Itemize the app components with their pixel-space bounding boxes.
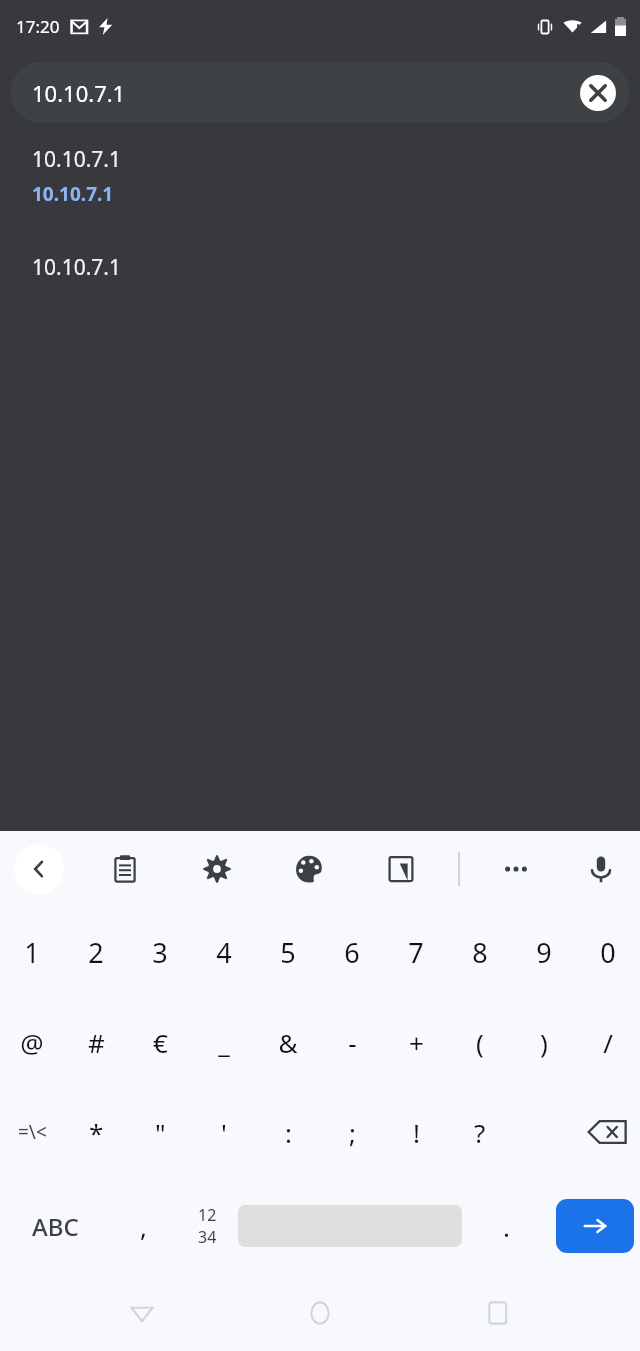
staticText: * — [89, 1115, 104, 1150]
button[interactable]: ? — [448, 1087, 512, 1177]
staticText: 5 — [280, 934, 296, 971]
staticText: @ — [20, 1025, 44, 1060]
staticText: , — [140, 1209, 147, 1244]
staticText: 8 — [472, 934, 488, 971]
button[interactable]: 10.10.7.1 — [0, 145, 640, 174]
staticText: ' — [221, 1115, 227, 1150]
button[interactable]: Clear — [578, 73, 618, 113]
staticText: ) — [540, 1025, 548, 1060]
staticText: 4 — [216, 934, 232, 971]
button[interactable]: - — [320, 997, 384, 1087]
button[interactable]: : — [256, 1087, 320, 1177]
button[interactable]: . — [462, 1177, 550, 1275]
button[interactable]: Themes — [283, 843, 335, 895]
staticText: ( — [476, 1025, 484, 1060]
staticText: 0 — [600, 934, 616, 971]
button[interactable]: More options — [490, 843, 542, 895]
staticText: 10.10.7.1 — [32, 253, 121, 282]
button[interactable]: 10.10.7.1 — [0, 253, 640, 282]
staticText: € — [153, 1025, 168, 1060]
button[interactable]: 4 — [192, 907, 256, 997]
button[interactable]: 9 — [512, 907, 576, 997]
staticText: 3 — [152, 934, 168, 971]
staticText: 17:20 — [16, 15, 60, 38]
button[interactable]: € — [128, 997, 192, 1087]
staticText: - — [348, 1025, 357, 1060]
staticText: 7 — [408, 934, 424, 971]
staticText: _ — [218, 1025, 230, 1060]
button[interactable]: # — [64, 997, 128, 1087]
button[interactable]: Voice input — [575, 843, 627, 895]
button[interactable]: 6 — [320, 907, 384, 997]
button[interactable]: Back — [14, 844, 64, 894]
button[interactable]: 0 — [576, 907, 640, 997]
button[interactable]: " — [128, 1087, 192, 1177]
staticText: 9 — [536, 934, 552, 971]
staticText: ; — [349, 1115, 356, 1150]
staticText: ? — [474, 1115, 486, 1150]
button[interactable]: Backspace — [576, 1087, 640, 1177]
button[interactable]: =\< — [0, 1087, 64, 1177]
staticText: 34 — [198, 1226, 217, 1248]
button[interactable]: _ — [192, 997, 256, 1087]
button[interactable]: ; — [320, 1087, 384, 1177]
button[interactable]: 2 — [64, 907, 128, 997]
button[interactable]: * — [64, 1087, 128, 1177]
staticText: 10.10.7.1 — [32, 145, 121, 174]
button[interactable]: Back — [106, 1277, 178, 1349]
staticText: : — [285, 1115, 292, 1150]
button[interactable]: Recents — [462, 1277, 534, 1349]
button[interactable]: ) — [512, 997, 576, 1087]
button[interactable]: 10.10.7.1 — [0, 181, 640, 207]
button[interactable]: Stickers — [375, 843, 427, 895]
button[interactable]: 8 — [448, 907, 512, 997]
staticText: 6 — [344, 934, 360, 971]
button[interactable]: Numbers — [176, 1177, 238, 1275]
staticText: / — [603, 1025, 613, 1060]
staticText: # — [88, 1025, 105, 1060]
button[interactable]: & — [256, 997, 320, 1087]
button[interactable]: + — [384, 997, 448, 1087]
button[interactable]: ! — [384, 1087, 448, 1177]
staticText: " — [155, 1115, 166, 1150]
button[interactable]: Settings — [191, 843, 243, 895]
button[interactable]: 5 — [256, 907, 320, 997]
button[interactable]: ( — [448, 997, 512, 1087]
button[interactable]: 10.10.7.1 — [11, 62, 629, 123]
staticText: . — [503, 1209, 510, 1244]
staticText: 10.10.7.1 — [32, 181, 114, 207]
staticText: =\< — [18, 1119, 47, 1145]
button[interactable]: ABC — [0, 1177, 110, 1275]
staticText: & — [278, 1025, 298, 1060]
button[interactable]: @ — [0, 997, 64, 1087]
button[interactable]: Home — [284, 1277, 356, 1349]
staticText: 12 — [198, 1204, 217, 1226]
staticText: ABC — [32, 1210, 79, 1243]
staticText: ! — [413, 1115, 420, 1150]
button[interactable]: , — [110, 1177, 176, 1275]
staticText: 1 — [24, 934, 40, 971]
staticText: + — [409, 1025, 424, 1060]
button[interactable]: Go — [556, 1199, 634, 1253]
button[interactable]: ' — [192, 1087, 256, 1177]
button[interactable]: 3 — [128, 907, 192, 997]
staticText: 2 — [88, 934, 104, 971]
button[interactable]: 7 — [384, 907, 448, 997]
button[interactable]: Clipboard — [99, 843, 151, 895]
button[interactable]: 1 — [0, 907, 64, 997]
staticText: 10.10.7.1 — [32, 78, 126, 108]
button[interactable]: / — [576, 997, 640, 1087]
